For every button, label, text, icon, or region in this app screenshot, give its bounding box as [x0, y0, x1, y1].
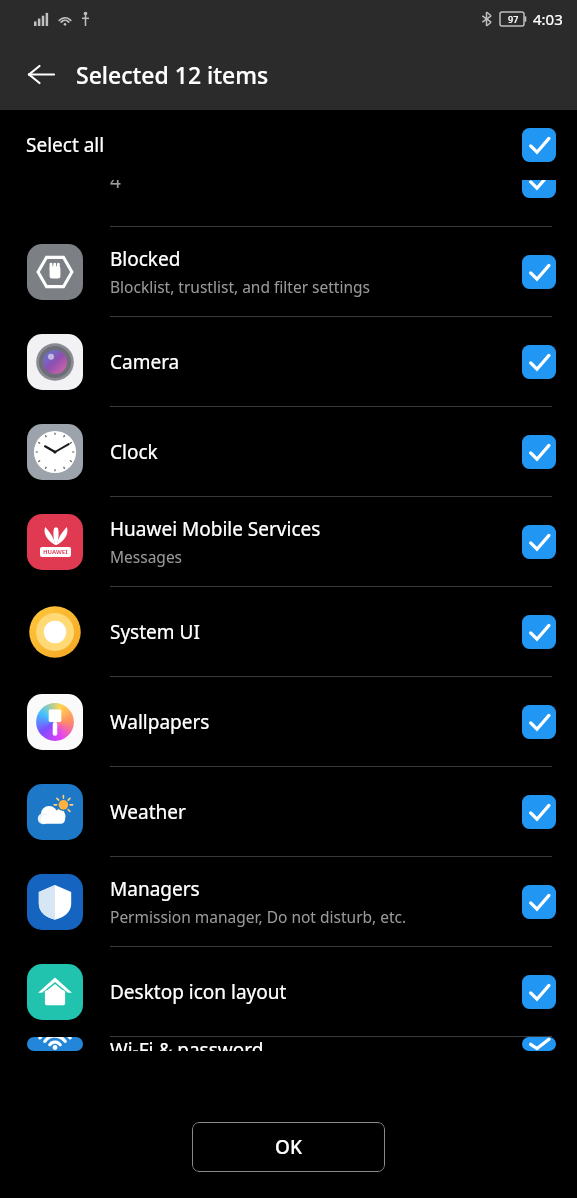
button[interactable]: OK: [192, 1122, 385, 1172]
button[interactable]: Selected: [522, 795, 556, 829]
staticText: Wi-Fi & password: [110, 1037, 264, 1051]
button[interactable]: Blocked: [0, 227, 577, 317]
button[interactable]: Selected: [522, 705, 556, 739]
staticText: Selected 12 items: [76, 59, 269, 90]
button[interactable]: Selected: [522, 345, 556, 379]
button[interactable]: Selected: [522, 975, 556, 1009]
staticText: Clock: [110, 439, 158, 465]
staticText: Camera: [110, 349, 180, 375]
button[interactable]: Managers: [0, 857, 577, 947]
staticText: Blocklist, trustlist, and filter setting…: [110, 276, 370, 297]
staticText: Select all: [26, 132, 105, 158]
button[interactable]: Clock: [0, 407, 577, 497]
button[interactable]: Back: [14, 47, 68, 101]
button[interactable]: Selected: [522, 1037, 556, 1051]
button[interactable]: Selected: [522, 615, 556, 649]
staticText: 4: [110, 180, 121, 194]
staticText: 97: [508, 13, 519, 25]
staticText: Wallpapers: [110, 709, 210, 735]
button[interactable]: Selected: [522, 525, 556, 559]
staticText: Blocked: [110, 246, 181, 272]
button[interactable]: Selected: [522, 435, 556, 469]
staticText: Huawei Mobile Services: [110, 516, 321, 542]
button[interactable]: System UI: [0, 587, 577, 677]
button[interactable]: Desktop icon layout: [0, 947, 577, 1037]
staticText: 4:03: [533, 9, 563, 29]
staticText: Weather: [110, 799, 186, 825]
button[interactable]: HUAWEI: [0, 497, 577, 587]
staticText: Messages: [110, 546, 183, 567]
button[interactable]: Camera: [0, 317, 577, 407]
button[interactable]: Wi-Fi & password: [0, 1037, 577, 1051]
staticText: OK: [275, 1134, 302, 1160]
button[interactable]: 4: [0, 180, 577, 227]
button[interactable]: Selected: [522, 885, 556, 919]
staticText: Managers: [110, 876, 200, 902]
button[interactable]: Wallpapers: [0, 677, 577, 767]
staticText: HUAWEI: [43, 548, 68, 556]
button[interactable]: Select all: [0, 110, 577, 180]
staticText: Permission manager, Do not disturb, etc.: [110, 906, 407, 927]
button[interactable]: Weather: [0, 767, 577, 857]
staticText: Desktop icon layout: [110, 979, 287, 1005]
button[interactable]: Selected: [522, 128, 556, 162]
button[interactable]: Selected: [522, 180, 556, 198]
staticText: System UI: [110, 619, 200, 645]
button[interactable]: Selected: [522, 255, 556, 289]
